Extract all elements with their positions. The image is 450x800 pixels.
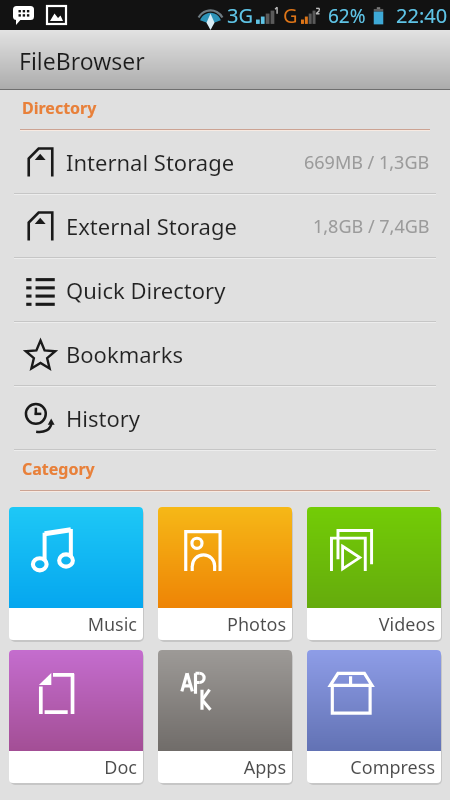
- staticText: Music: [9, 612, 137, 637]
- staticText: Quick Directory: [66, 275, 226, 305]
- staticText: Category: [22, 458, 95, 480]
- staticText: G: [283, 2, 298, 29]
- staticText: 669MB / 1,3GB: [304, 150, 430, 175]
- staticText: Internal Storage: [66, 147, 235, 177]
- button[interactable]: History: [0, 387, 450, 451]
- button[interactable]: Compress: [307, 650, 441, 783]
- staticText: Bookmarks: [66, 339, 183, 369]
- staticText: 1,8GB / 7,4GB: [313, 214, 430, 239]
- button[interactable]: External Storage: [0, 195, 450, 259]
- staticText: FileBrowser: [19, 45, 145, 76]
- staticText: Directory: [22, 97, 97, 119]
- staticText: External Storage: [66, 211, 237, 241]
- staticText: Apps: [158, 755, 286, 780]
- button[interactable]: Internal Storage: [0, 131, 450, 195]
- button[interactable]: Music: [9, 507, 143, 640]
- staticText: 62%: [328, 3, 366, 29]
- staticText: 3G: [227, 2, 253, 29]
- staticText: Doc: [9, 755, 137, 780]
- staticText: Videos: [307, 612, 435, 637]
- button[interactable]: Bookmarks: [0, 323, 450, 387]
- button[interactable]: Quick Directory: [0, 259, 450, 323]
- button[interactable]: Apps: [158, 650, 292, 783]
- button[interactable]: Videos: [307, 507, 441, 640]
- staticText: Photos: [158, 612, 286, 637]
- button[interactable]: Doc: [9, 650, 143, 783]
- staticText: History: [66, 403, 141, 433]
- button[interactable]: Photos: [158, 507, 292, 640]
- staticText: 22:40: [396, 2, 448, 29]
- staticText: Compress: [307, 755, 435, 780]
